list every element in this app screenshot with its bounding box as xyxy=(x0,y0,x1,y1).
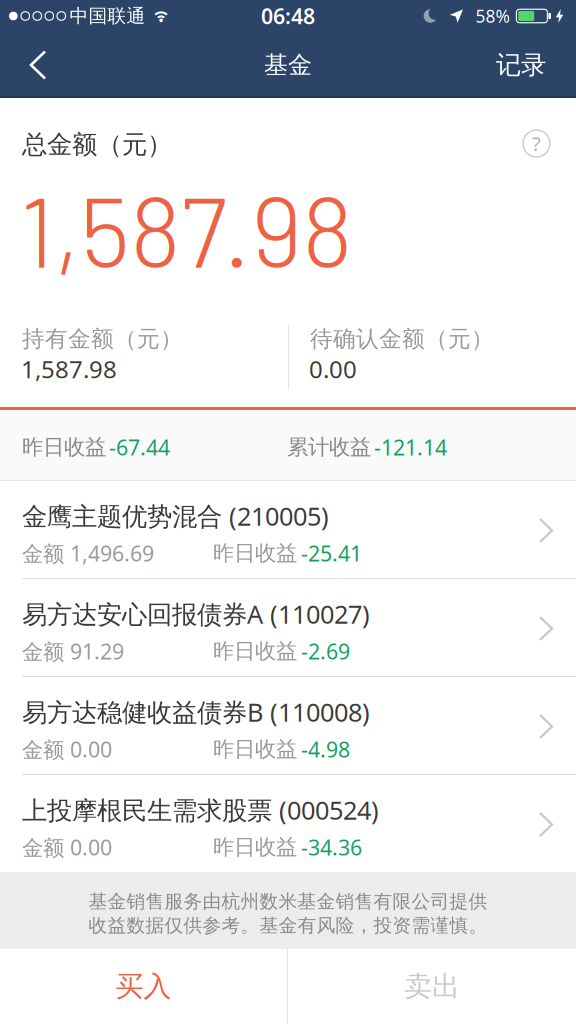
staticText: 金额 91.29 xyxy=(22,637,124,665)
staticText: 58% xyxy=(475,4,509,27)
staticText: 06:48 xyxy=(261,2,315,30)
staticText: 金额 0.00 xyxy=(22,833,112,861)
button[interactable]: 返回 xyxy=(0,37,61,92)
button[interactable]: 买入 xyxy=(0,949,287,1024)
staticText: 昨日收益 xyxy=(213,736,297,762)
staticText: 昨日收益 xyxy=(213,638,297,664)
button[interactable]: 易方达稳健收益债券B (110008) xyxy=(0,677,576,774)
staticText: 易方达安心回报债券A (110027) xyxy=(22,597,370,631)
staticText: 待确认金额（元） xyxy=(310,325,494,353)
staticText: 昨日收益 xyxy=(213,540,297,566)
staticText: 卖出 xyxy=(404,969,460,1004)
staticText: 累计收益 xyxy=(287,434,371,460)
staticText: 易方达稳健收益债券B (110008) xyxy=(22,695,370,729)
staticText: 中国联通 xyxy=(70,4,146,27)
staticText: -25.41 xyxy=(301,539,362,567)
staticText: 1,587.98 xyxy=(20,169,353,287)
staticText: -121.14 xyxy=(374,433,447,461)
staticText: 上投摩根民生需求股票 (000524) xyxy=(22,793,379,827)
staticText: 买入 xyxy=(115,969,171,1004)
button[interactable]: 帮助 xyxy=(523,130,550,157)
staticText: -4.98 xyxy=(301,735,350,763)
button[interactable]: 易方达安心回报债券A (110027) xyxy=(0,579,576,676)
staticText: 基金销售服务由杭州数米基金销售有限公司提供 xyxy=(88,890,487,913)
staticText: 记录 xyxy=(496,49,546,80)
button[interactable]: 金鹰主题优势混合 (210005) xyxy=(0,481,576,578)
staticText: 昨日收益 xyxy=(22,434,106,460)
button[interactable]: 上投摩根民生需求股票 (000524) xyxy=(0,775,576,872)
staticText: 基金 xyxy=(264,50,312,80)
staticText: 收益数据仅供参考。基金有风险，投资需谨慎。 xyxy=(88,914,487,937)
staticText: -2.69 xyxy=(301,637,350,665)
staticText: -67.44 xyxy=(109,433,170,461)
staticText: 0.00 xyxy=(309,353,357,385)
staticText: 金额 0.00 xyxy=(22,735,112,763)
staticText: 1,587.98 xyxy=(21,353,117,385)
button[interactable]: 卖出 xyxy=(288,949,576,1024)
staticText: 总金额（元） xyxy=(22,129,172,160)
staticText: 昨日收益 xyxy=(213,834,297,860)
staticText: 持有金额（元） xyxy=(22,325,183,353)
staticText: 金额 1,496.69 xyxy=(22,539,154,567)
staticText: -34.36 xyxy=(301,833,362,861)
button[interactable]: 记录 xyxy=(480,33,576,96)
staticText: ? xyxy=(532,130,541,157)
staticText: 金鹰主题优势混合 (210005) xyxy=(22,499,329,533)
